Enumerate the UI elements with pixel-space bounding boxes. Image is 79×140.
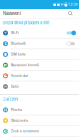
button[interactable]: Wi-Fi [0,28,79,38]
staticText: Plocha [11,108,22,112]
staticText: Wi-Fi [11,31,19,35]
button[interactable]: Zvuk a oznámení [0,126,79,137]
staticText: Obrazovka [11,119,28,122]
staticText: Využití dat [11,74,28,78]
staticText: Nastavení [3,11,21,16]
button[interactable]: Obrazovka [0,115,79,126]
staticText: Zvuk a oznámení [11,129,39,133]
button[interactable]: Plocha [0,104,79,115]
staticText: SIM karty [11,53,26,56]
button[interactable]: Search [66,9,75,18]
button[interactable]: Bluetooth [0,38,79,49]
staticText: Zařízení [3,97,18,102]
staticText: Bezdrátová připojení a sítě [3,20,49,25]
staticText: Další [11,85,19,88]
staticText: Bluetooth [11,42,26,45]
button[interactable]: SIM karty [0,49,79,60]
button[interactable]: Využití dat [0,70,79,81]
button[interactable]: Nastavení hovorů [0,60,79,70]
button[interactable]: Další [0,81,79,92]
staticText: 12:34 [68,2,77,7]
staticText: Nastavení hovorů [11,63,39,67]
